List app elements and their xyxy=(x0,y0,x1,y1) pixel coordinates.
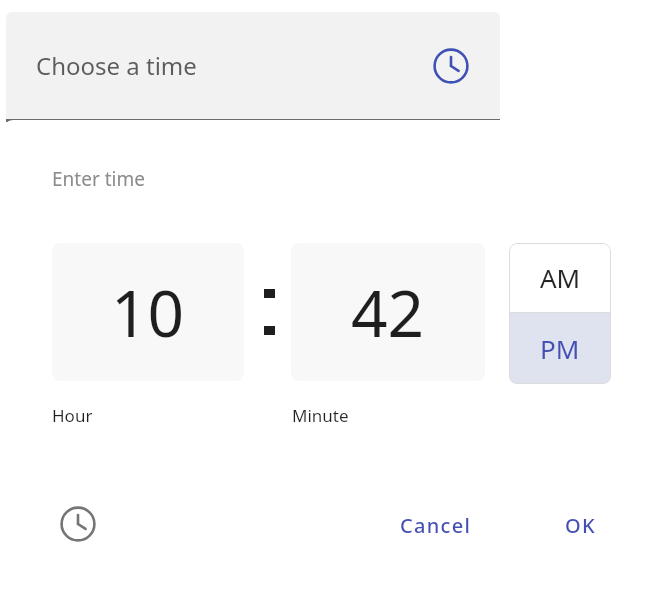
button[interactable]: PM xyxy=(509,313,611,384)
button[interactable]: Choose a time xyxy=(6,12,500,119)
button[interactable]: Switch to clock mode xyxy=(56,502,100,546)
staticText: Minute xyxy=(292,404,349,427)
staticText: Choose a time xyxy=(36,49,197,82)
button[interactable]: AM xyxy=(509,243,611,312)
button[interactable]: Cancel xyxy=(373,502,499,548)
button[interactable]: Open time picker xyxy=(431,46,471,86)
button[interactable]: 10 xyxy=(52,243,244,381)
button[interactable]: 42 xyxy=(291,243,485,381)
button[interactable]: OK xyxy=(535,502,625,548)
staticText: Hour xyxy=(52,404,93,427)
staticText: Cancel xyxy=(400,512,472,539)
staticText: PM xyxy=(540,331,580,366)
staticText: OK xyxy=(565,512,596,539)
staticText: Enter time xyxy=(52,166,145,192)
staticText: 42 xyxy=(351,269,425,356)
staticText: 10 xyxy=(111,269,185,356)
staticText: AM xyxy=(540,260,581,295)
